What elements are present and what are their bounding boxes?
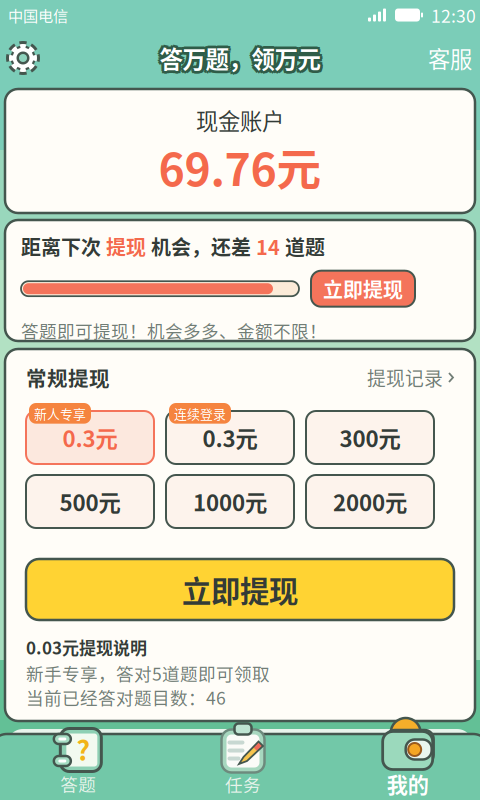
staticText: 答万题，领万元: [157, 43, 318, 77]
staticText: 答题即可提现！机会多多、金额不限！: [21, 318, 327, 343]
button[interactable]: 0.3元: [166, 411, 294, 464]
staticText: 答万题，领万元: [159, 41, 320, 75]
staticText: 答题: [60, 771, 96, 796]
staticText: 答万题，领万元: [162, 39, 323, 73]
staticText: 答万题，领万元: [162, 43, 323, 77]
staticText: 常规提现: [26, 363, 110, 392]
staticText: 12:30: [431, 2, 476, 28]
staticText: 任务: [225, 771, 261, 797]
staticText: 当前已经答对题目数：46: [26, 684, 226, 710]
staticText: 2000元: [333, 485, 407, 518]
button[interactable]: 500元: [26, 475, 154, 528]
button[interactable]: 300元: [306, 411, 434, 464]
button[interactable]: 2000元: [306, 475, 434, 528]
staticText: 69.76元: [158, 134, 321, 199]
staticText: 答万题，领万元: [159, 44, 320, 78]
staticText: 新人专享: [34, 404, 86, 423]
staticText: 我的: [387, 769, 429, 799]
staticText: 新手专享，答对5道题即可领取: [26, 660, 270, 686]
button[interactable]: 立即提现: [26, 559, 454, 620]
staticText: 立即提现: [323, 274, 403, 303]
staticText: 0.3元: [62, 421, 117, 454]
staticText: 500元: [59, 485, 120, 518]
button[interactable]: ?: [0, 719, 161, 794]
staticText: 现金账户: [196, 104, 284, 136]
staticText: ?: [76, 729, 90, 769]
staticText: 立即提现: [182, 568, 298, 611]
staticText: 连续登录: [174, 404, 226, 423]
button[interactable]: 客服: [422, 42, 478, 74]
staticText: 答万题，领万元: [162, 41, 323, 75]
staticText: 机会，还差: [146, 232, 256, 261]
staticText: 0.03元提现说明: [26, 635, 147, 659]
staticText: 1000元: [193, 485, 267, 518]
staticText: 客服: [428, 42, 472, 74]
button[interactable]: 立即提现: [311, 271, 415, 307]
staticText: 答万题，领万元: [157, 41, 318, 75]
staticText: 距离下次: [21, 232, 106, 261]
button[interactable]: 提现记录: [367, 364, 454, 390]
staticText: 提现记录: [367, 364, 443, 391]
staticText: 答万题，领万元: [157, 39, 318, 73]
staticText: 答万题，领万元: [159, 38, 320, 72]
staticText: 中国电信: [8, 4, 68, 26]
button[interactable]: 任务: [161, 719, 325, 795]
button[interactable]: Settings: [4, 39, 42, 77]
staticText: 提现: [106, 232, 146, 261]
button[interactable]: 1000元: [166, 475, 294, 528]
staticText: 300元: [339, 421, 400, 454]
staticText: 0.3元: [202, 421, 257, 454]
staticText: 14: [256, 232, 280, 261]
staticText: 道题: [280, 232, 325, 261]
button[interactable]: 0.3元: [26, 411, 154, 464]
button[interactable]: 我的: [325, 718, 480, 796]
